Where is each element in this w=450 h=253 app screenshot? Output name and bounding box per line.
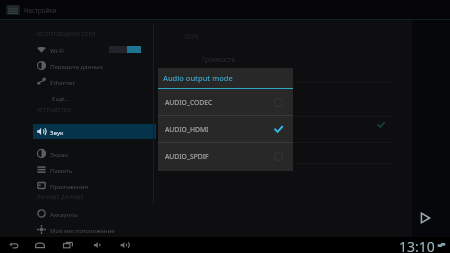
button[interactable]: AUDIO_CODEC: [158, 89, 293, 115]
staticText: Ещё...: [52, 94, 70, 102]
button[interactable]: Ещё...: [33, 90, 156, 105]
staticText: Audio output mode: [163, 73, 233, 83]
staticText: Передача данных: [50, 62, 103, 70]
staticText: Аккаунты: [50, 210, 78, 218]
staticText: Память: [50, 166, 73, 174]
staticText: AUDIO_HDMI: [165, 125, 209, 134]
staticText: ЛИЧНЫЕ ДАННЫЕ: [37, 194, 84, 201]
button[interactable]: Recents: [59, 237, 77, 253]
button[interactable]: Wi-Fi: [33, 42, 156, 57]
staticText: Wi-Fi: [50, 46, 64, 54]
staticText: Моё местоположение: [50, 226, 115, 234]
button[interactable]: Передача данных: [33, 58, 156, 73]
button[interactable]: AUDIO_HDMI: [158, 116, 293, 142]
staticText: ЗВУК: [183, 32, 200, 41]
staticText: AUDIO_SPDIF: [165, 152, 209, 161]
button[interactable]: Ethernet: [33, 74, 156, 89]
staticText: Настройки: [24, 6, 57, 14]
button[interactable]: Аккаунты: [33, 206, 156, 221]
button[interactable]: AUDIO_SPDIF: [158, 143, 293, 169]
staticText: Громкость: [202, 55, 235, 64]
button[interactable]: Volume down: [88, 237, 106, 253]
staticText: Звук: [50, 128, 64, 136]
button[interactable]: 13:10: [399, 237, 446, 253]
staticText: Ethernet: [50, 78, 75, 86]
button[interactable]: Звук: [33, 124, 156, 139]
button[interactable]: Приложения: [33, 178, 156, 193]
staticText: Экран: [50, 150, 69, 158]
button[interactable]: Настройки: [0, 0, 57, 20]
button[interactable]: Volume up: [116, 237, 134, 253]
staticText: БЕСПРОВОДНЫЕ СЕТИ: [37, 31, 96, 38]
staticText: AUDIO_CODEC: [165, 98, 213, 107]
button[interactable]: Память: [33, 162, 156, 177]
staticText: УСТРОЙСТВО: [37, 107, 72, 114]
staticText: 13:10: [399, 237, 435, 253]
button[interactable]: Экран: [33, 146, 156, 161]
button[interactable]: Моё местоположение: [33, 222, 156, 237]
button[interactable]: Home: [31, 237, 49, 253]
button[interactable]: Back: [5, 237, 23, 253]
staticText: Приложения: [50, 182, 88, 190]
